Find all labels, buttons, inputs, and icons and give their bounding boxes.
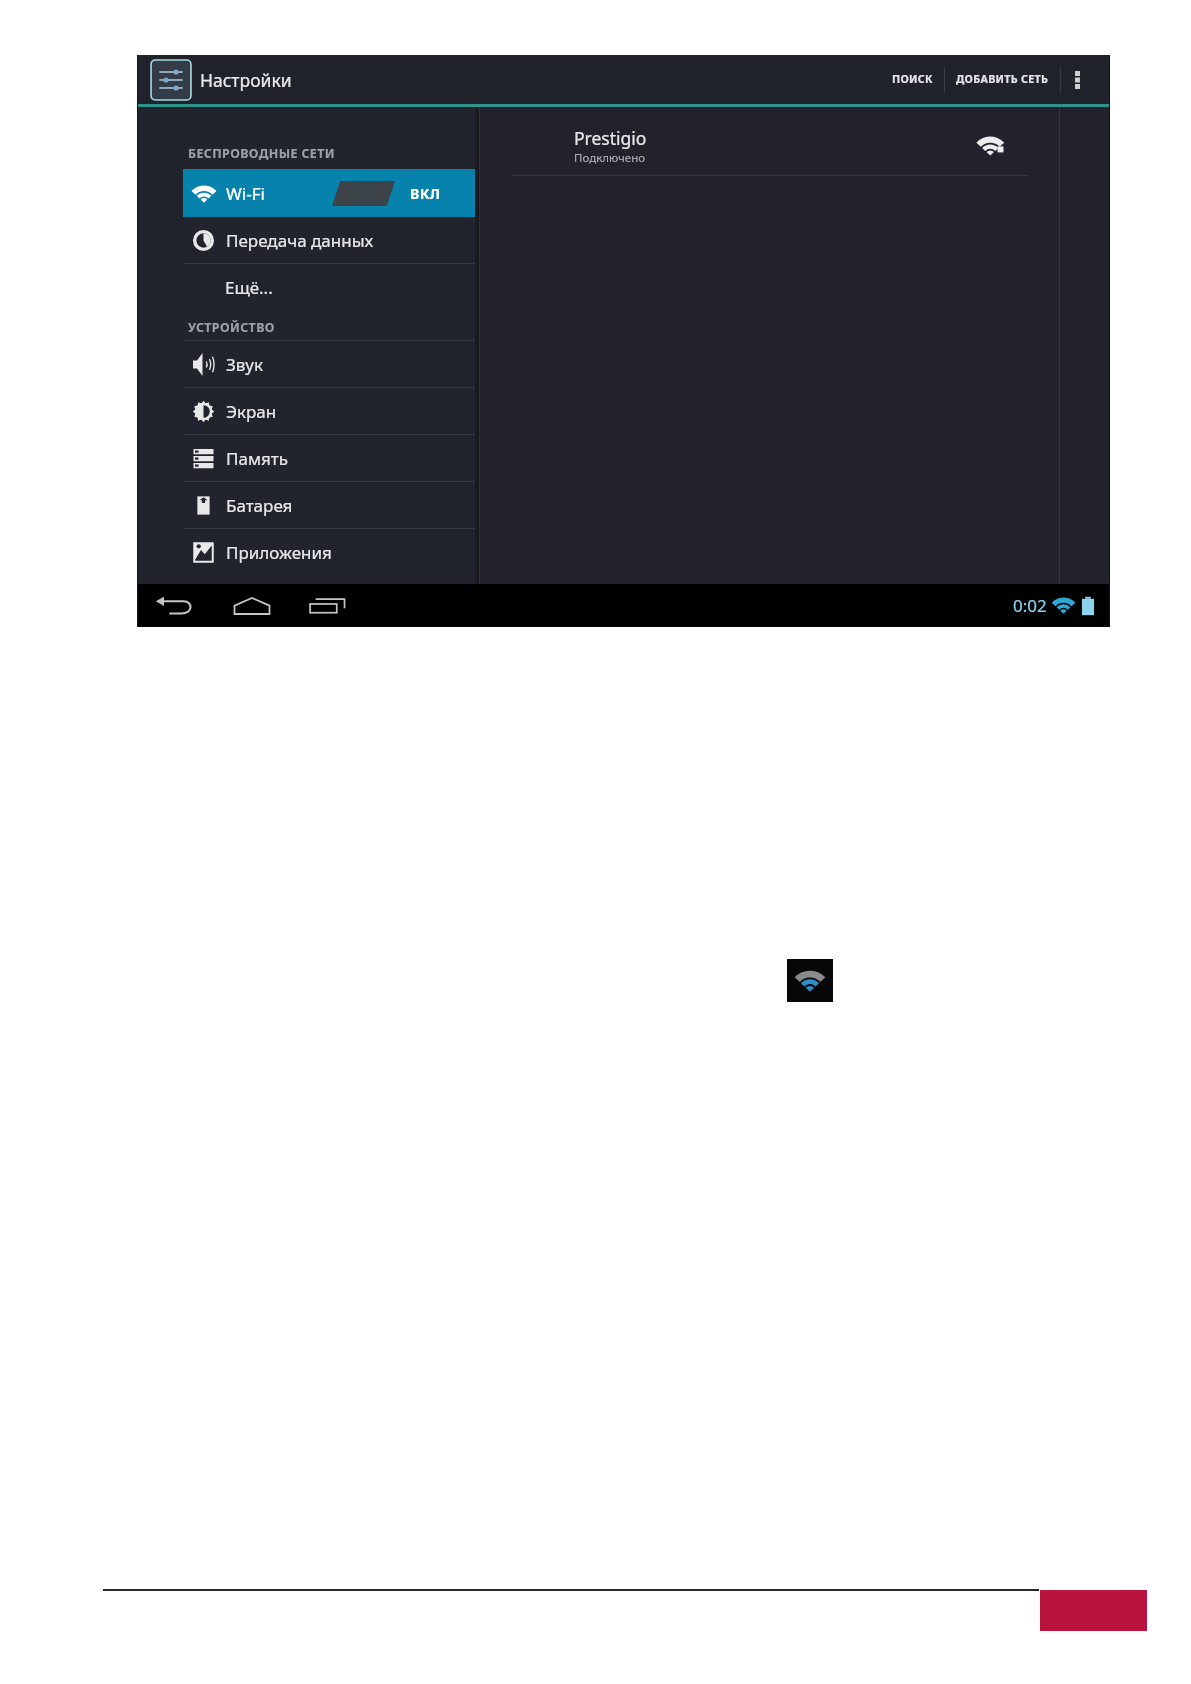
- staticText: 0:02: [1013, 594, 1047, 617]
- button[interactable]: Приложения: [137, 529, 475, 575]
- staticText: Ещё...: [225, 276, 273, 299]
- button[interactable]: ДОБАВИТЬ СЕТЬ: [945, 55, 1060, 104]
- staticText: Приложения: [226, 541, 332, 564]
- staticText: ВКЛ: [410, 184, 441, 203]
- button[interactable]: Память: [137, 435, 475, 481]
- staticText: Память: [226, 447, 288, 470]
- button[interactable]: Home: [229, 584, 274, 627]
- button[interactable]: Settings: [150, 59, 192, 101]
- staticText: Экран: [226, 400, 277, 423]
- staticText: БЕСПРОВОДНЫЕ СЕТИ: [188, 145, 335, 162]
- button[interactable]: Prestigio: [480, 121, 1058, 171]
- button[interactable]: Wi-Fi: [137, 169, 475, 217]
- button[interactable]: Back: [153, 584, 198, 627]
- staticText: ПОИСК: [892, 72, 933, 87]
- staticText: Настройки: [200, 68, 292, 92]
- staticText: Wi-Fi: [226, 182, 265, 205]
- button[interactable]: More options: [1061, 55, 1094, 104]
- button[interactable]: Recent apps: [305, 584, 350, 627]
- staticText: Подключено: [574, 150, 646, 166]
- button[interactable]: Передача данных: [137, 217, 475, 263]
- staticText: Батарея: [226, 494, 293, 517]
- staticText: УСТРОЙСТВО: [188, 319, 275, 336]
- staticText: Prestigio: [574, 126, 647, 150]
- button[interactable]: Батарея: [137, 482, 475, 528]
- button[interactable]: Экран: [137, 388, 475, 434]
- staticText: ДОБАВИТЬ СЕТЬ: [956, 72, 1049, 87]
- button[interactable]: ПОИСК: [881, 55, 944, 104]
- button[interactable]: Звук: [137, 341, 475, 387]
- staticText: Звук: [226, 353, 263, 376]
- staticText: Передача данных: [226, 229, 374, 252]
- button[interactable]: Ещё...: [137, 264, 475, 311]
